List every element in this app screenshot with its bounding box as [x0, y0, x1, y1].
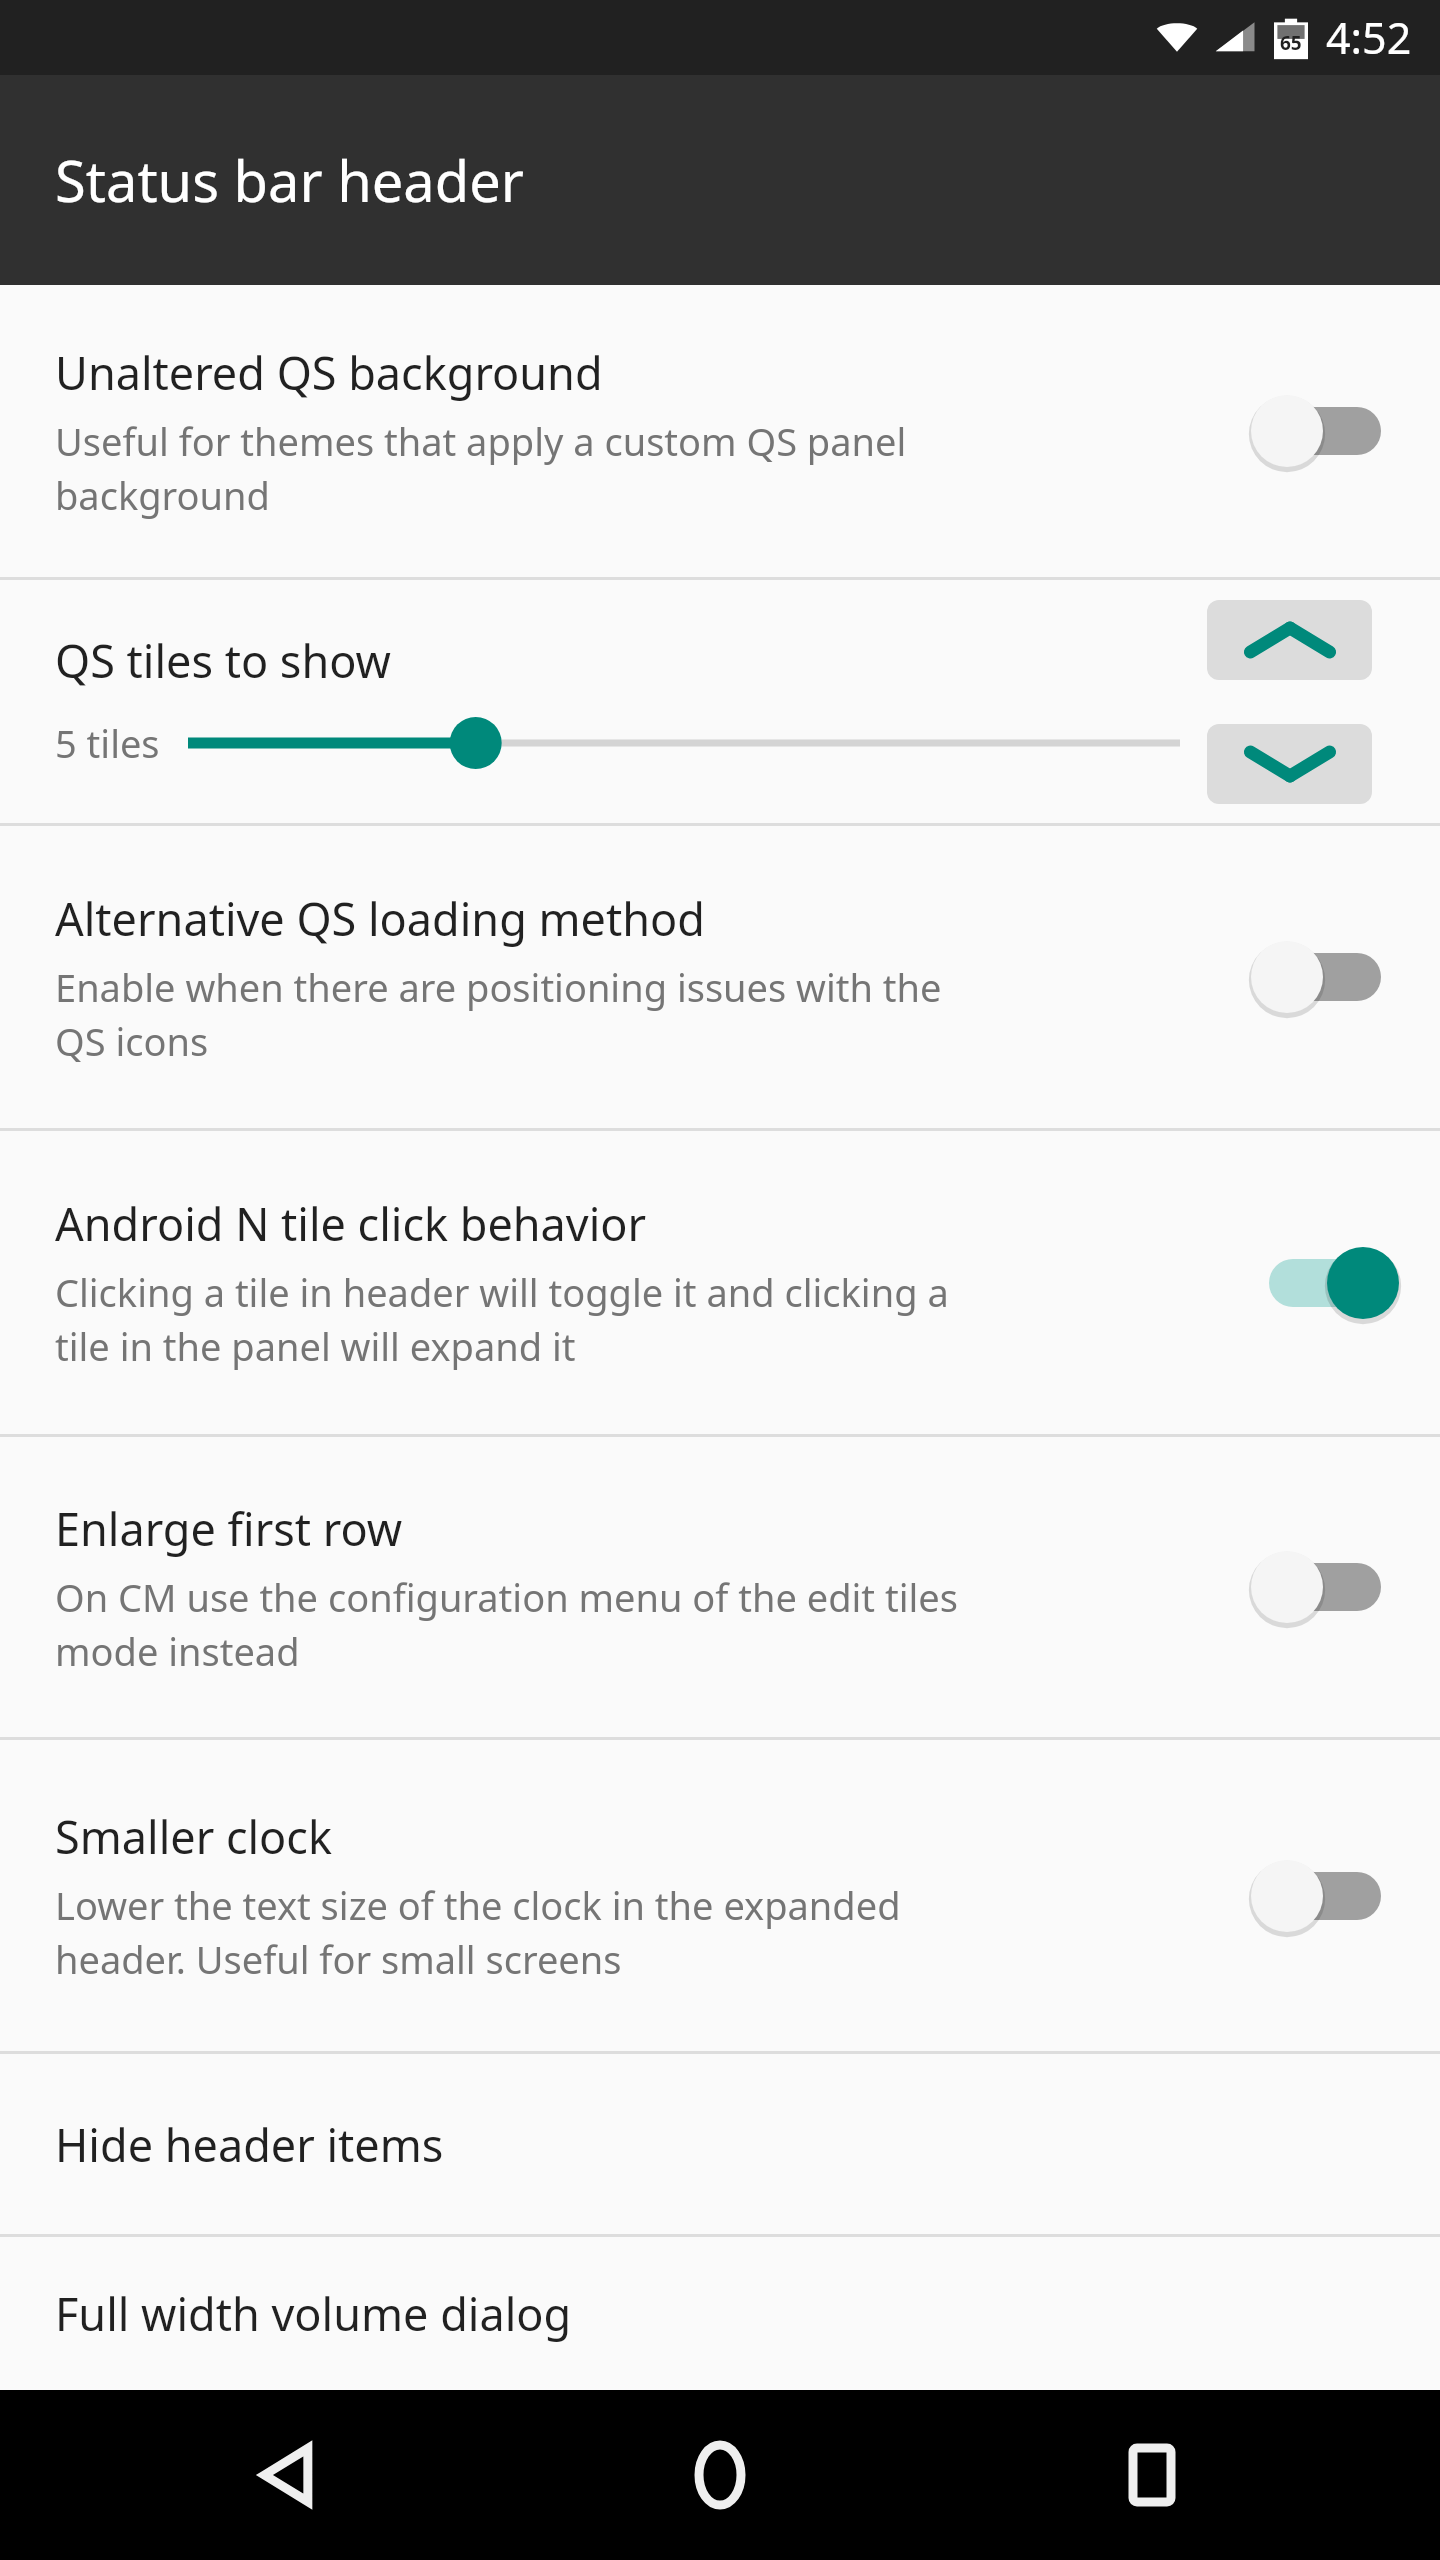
staticText: Lower the text size of the clock in the …: [55, 1879, 901, 1985]
staticText: On CM use the configuration menu of the …: [55, 1571, 958, 1677]
button[interactable]: Alternative QS loading method: [0, 826, 1440, 1128]
button[interactable]: Decrease: [1207, 724, 1372, 804]
staticText: Useful for themes that apply a custom QS…: [55, 415, 907, 521]
staticText: Smaller clock: [55, 1806, 332, 1867]
staticText: Full width volume dialog: [55, 2283, 572, 2344]
button[interactable]: Recent apps: [1077, 2400, 1227, 2550]
button[interactable]: QS tiles slider: [188, 713, 1180, 773]
button[interactable]: Increase: [1207, 600, 1372, 680]
button[interactable]: Full width volume dialog: [0, 2237, 1440, 2390]
staticText: 4:52: [1326, 8, 1412, 67]
staticText: Enlarge first row: [55, 1498, 403, 1559]
button[interactable]: Enlarge first row: [0, 1437, 1440, 1737]
button[interactable]: On: [1250, 1233, 1400, 1333]
staticText: Hide header items: [55, 2114, 444, 2175]
staticText: 65: [1280, 30, 1302, 56]
staticText: QS tiles to show: [55, 630, 391, 691]
staticText: Android N tile click behavior: [55, 1193, 647, 1254]
staticText: Status bar header: [55, 142, 524, 218]
button[interactable]: Home: [645, 2400, 795, 2550]
staticText: Alternative QS loading method: [55, 888, 705, 949]
button[interactable]: Off: [1250, 381, 1400, 481]
button[interactable]: Off: [1250, 1846, 1400, 1946]
staticText: Unaltered QS background: [55, 342, 603, 403]
button[interactable]: Unaltered QS background: [0, 285, 1440, 577]
staticText: Enable when there are positioning issues…: [55, 961, 942, 1067]
staticText: Clicking a tile in header will toggle it…: [55, 1266, 949, 1372]
button[interactable]: Off: [1250, 1537, 1400, 1637]
button[interactable]: Android N tile click behavior: [0, 1131, 1440, 1434]
button[interactable]: Smaller clock: [0, 1740, 1440, 2051]
button[interactable]: Hide header items: [0, 2054, 1440, 2234]
button[interactable]: Back: [213, 2400, 363, 2550]
button[interactable]: Off: [1250, 927, 1400, 1027]
staticText: 5 tiles: [55, 717, 160, 769]
